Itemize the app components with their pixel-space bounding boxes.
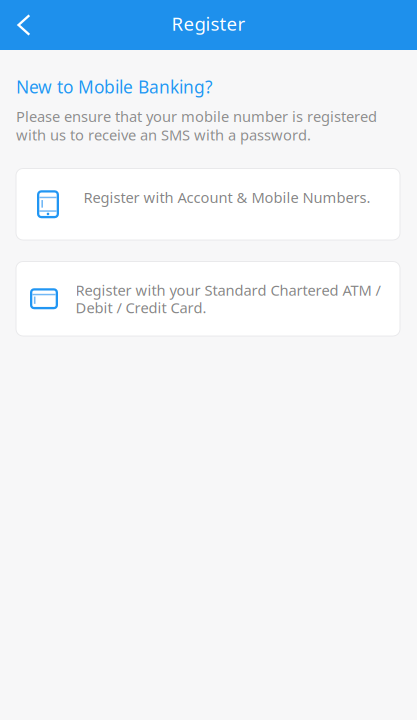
staticText: Register with Account & Mobile Numbers. (83, 187, 370, 207)
button[interactable]: Back (0, 0, 48, 50)
staticText: Register with your Standard Chartered AT… (75, 280, 380, 300)
button[interactable]: Register with your Standard Chartered AT… (16, 261, 400, 336)
button[interactable]: Register with Account & Mobile Numbers. (16, 168, 400, 240)
staticText: Register (171, 11, 245, 36)
staticText: Please ensure that your mobile number is… (16, 106, 377, 126)
staticText: with us to receive an SMS with a passwor… (16, 125, 311, 144)
staticText: Debit / Credit Card. (75, 298, 206, 317)
staticText: New to Mobile Banking? (16, 75, 213, 98)
